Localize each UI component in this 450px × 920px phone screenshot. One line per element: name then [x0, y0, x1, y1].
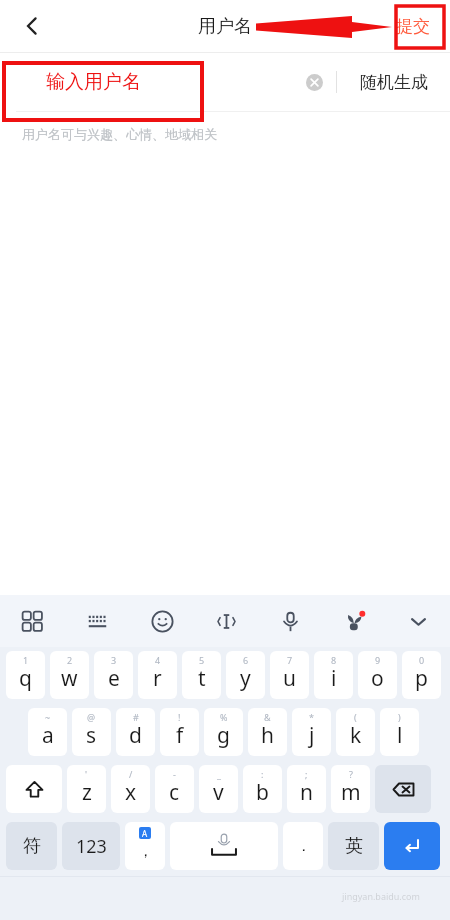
staticText: z	[82, 778, 92, 807]
staticText: 8	[331, 654, 337, 666]
button[interactable]: 0	[402, 651, 441, 699]
staticText: d	[129, 721, 142, 750]
button[interactable]: 符	[6, 822, 57, 870]
staticText: r	[153, 664, 162, 693]
button[interactable]: Shift	[6, 765, 62, 813]
button[interactable]: Enter	[384, 822, 440, 870]
button[interactable]: 随机生成	[354, 66, 434, 99]
staticText: A	[142, 828, 148, 839]
staticText: k	[350, 721, 362, 750]
staticText: w	[61, 664, 78, 693]
staticText: ~	[45, 711, 51, 723]
button[interactable]: Skin	[322, 595, 386, 647]
button[interactable]: _	[199, 765, 238, 813]
staticText: i	[331, 664, 337, 693]
button[interactable]: 8	[314, 651, 353, 699]
button[interactable]: @	[72, 708, 111, 756]
button[interactable]: ;	[287, 765, 326, 813]
staticText: 用户名可与兴趣、心情、地域相关	[22, 126, 217, 142]
button[interactable]: !	[160, 708, 199, 756]
staticText: x	[125, 778, 137, 807]
button[interactable]: 提交	[390, 12, 436, 41]
button[interactable]: *	[292, 708, 331, 756]
staticText: a	[42, 721, 54, 750]
staticText: v	[213, 778, 224, 807]
button[interactable]: 6	[226, 651, 265, 699]
button[interactable]: /	[111, 765, 150, 813]
staticText: 2	[67, 654, 73, 666]
staticText: jingyan.baidu.com	[342, 890, 420, 902]
button[interactable]: (	[336, 708, 375, 756]
staticText: %	[220, 711, 228, 723]
staticText: b	[256, 778, 269, 807]
button[interactable]: Hide keyboard	[386, 595, 450, 647]
staticText: 6	[243, 654, 249, 666]
staticText: n	[300, 778, 313, 807]
button[interactable]: 7	[270, 651, 309, 699]
staticText: ?	[349, 768, 353, 780]
button[interactable]: A	[125, 822, 165, 870]
staticText: 0	[419, 654, 425, 666]
staticText: o	[371, 664, 384, 693]
staticText: p	[415, 664, 428, 693]
button[interactable]: Keyboard layout	[65, 595, 130, 647]
staticText: 9	[375, 654, 381, 666]
button[interactable]: 英	[328, 822, 379, 870]
button[interactable]: 5	[182, 651, 221, 699]
button[interactable]: Clear	[297, 65, 331, 99]
button[interactable]: 4	[138, 651, 177, 699]
staticText: /	[129, 768, 133, 780]
button[interactable]: 3	[94, 651, 133, 699]
staticText: 输入用户名	[46, 70, 141, 94]
staticText: m	[341, 778, 361, 807]
staticText: s	[86, 721, 97, 750]
button[interactable]: Emoji	[130, 595, 194, 647]
staticText: )	[398, 711, 401, 723]
staticText: l	[397, 721, 403, 750]
staticText: 3	[111, 654, 117, 666]
staticText: 7	[287, 654, 293, 666]
button[interactable]: 2	[50, 651, 89, 699]
button[interactable]: 9	[358, 651, 397, 699]
button[interactable]: ?	[331, 765, 370, 813]
button[interactable]: #	[116, 708, 155, 756]
button[interactable]: )	[380, 708, 419, 756]
staticText: &	[264, 711, 271, 723]
staticText: 用户名	[198, 15, 252, 38]
staticText: *	[309, 711, 314, 723]
staticText: q	[19, 664, 32, 693]
staticText: #	[133, 711, 139, 723]
staticText: 4	[155, 654, 161, 666]
staticText: 提交	[396, 16, 430, 37]
button[interactable]: ．	[283, 822, 323, 870]
button[interactable]: &	[248, 708, 287, 756]
button[interactable]: %	[204, 708, 243, 756]
button[interactable]: Back	[12, 6, 52, 46]
staticText: c	[169, 778, 180, 807]
staticText: @	[87, 711, 96, 723]
staticText: :	[261, 768, 264, 780]
staticText: 123	[76, 834, 107, 859]
button[interactable]: Space	[170, 822, 278, 870]
button[interactable]: 1	[6, 651, 45, 699]
staticText: g	[217, 721, 230, 750]
button[interactable]: Apps	[0, 595, 65, 647]
staticText: ，	[138, 842, 153, 861]
button[interactable]: :	[243, 765, 282, 813]
button[interactable]: 123	[62, 822, 120, 870]
staticText: !	[178, 711, 181, 723]
button[interactable]: Text edit	[194, 595, 258, 647]
staticText: 符	[23, 835, 41, 858]
staticText: 5	[199, 654, 205, 666]
staticText: (	[354, 711, 357, 723]
staticText: ．	[296, 837, 311, 856]
button[interactable]: -	[155, 765, 194, 813]
button[interactable]: Backspace	[375, 765, 431, 813]
staticText: 英	[345, 835, 363, 858]
button[interactable]: '	[67, 765, 106, 813]
button[interactable]: ~	[28, 708, 67, 756]
staticText: ;	[305, 768, 308, 780]
button[interactable]: Voice input	[258, 595, 322, 647]
staticText: t	[198, 664, 206, 693]
staticText: 1	[23, 654, 29, 666]
